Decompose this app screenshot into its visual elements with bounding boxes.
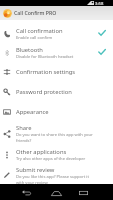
button[interactable]: Other applications: [0, 145, 113, 164]
staticText: Try also other apps of the developer: [16, 156, 86, 162]
staticText: Do you want to share this app with your …: [16, 132, 94, 143]
button[interactable]: Home: [43, 184, 69, 200]
staticText: Disable for Bluetooth headset: [16, 54, 74, 60]
staticText: Enable call confirm: [16, 35, 53, 41]
button[interactable]: Share: [0, 122, 113, 145]
button[interactable]: Bluetooth: [0, 43, 113, 62]
button[interactable]: Recent apps: [70, 184, 96, 200]
staticText: Share: [16, 124, 32, 132]
button[interactable]: Call confirmation: [0, 24, 113, 43]
button[interactable]: Call confirmation: [94, 24, 107, 43]
staticText: Other applications: [16, 148, 67, 156]
button[interactable]: Password protection: [0, 82, 113, 102]
staticText: Appearance: [16, 108, 49, 116]
staticText: Call Confirm PRO: [14, 9, 57, 16]
button[interactable]: Confirmation settings: [0, 62, 113, 82]
staticText: Submit review: [16, 166, 55, 174]
staticText: Confirmation settings: [16, 68, 76, 76]
staticText: Password protection: [16, 88, 72, 96]
staticText: Call confirmation: [16, 27, 63, 35]
staticText: Do you like this app? Please support it …: [16, 174, 94, 185]
button[interactable]: Bluetooth: [94, 43, 107, 62]
button[interactable]: Submit review: [0, 164, 113, 186]
staticText: 3:58: [95, 1, 104, 7]
button[interactable]: Back: [13, 184, 39, 200]
staticText: Bluetooth: [16, 46, 43, 54]
button[interactable]: Appearance: [0, 102, 113, 122]
